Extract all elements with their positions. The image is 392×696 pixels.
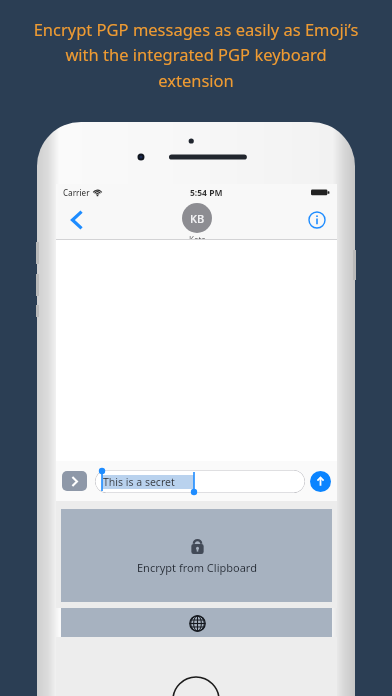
button[interactable]: Send (310, 471, 331, 492)
button[interactable]: Back (60, 203, 94, 237)
button[interactable]: Contact info (302, 205, 332, 235)
staticText: Encrypt PGP messages as easily as Emoji’… (26, 18, 366, 92)
button[interactable]: Encrypt from Clipboard (61, 509, 332, 602)
button[interactable]: App drawer (62, 471, 87, 491)
button[interactable]: KB (182, 203, 212, 241)
staticText: Encrypt from Clipboard (137, 560, 257, 575)
staticText: Kate (189, 234, 206, 241)
staticText: 5:54 PM (190, 187, 223, 199)
button[interactable]: This is a secret (95, 470, 305, 493)
staticText: KB (190, 211, 205, 226)
staticText: Carrier (63, 187, 90, 198)
button[interactable]: Switch keyboard (184, 610, 210, 636)
staticText: This is a secret (103, 475, 175, 489)
